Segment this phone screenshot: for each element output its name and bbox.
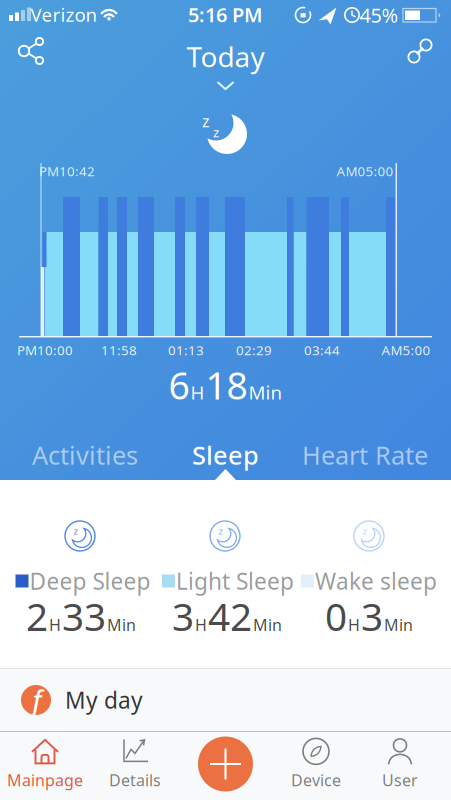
staticText: 02:29 bbox=[236, 341, 272, 359]
staticText: Verizon bbox=[30, 2, 97, 27]
staticText: H bbox=[195, 614, 207, 635]
staticText: f bbox=[32, 682, 41, 718]
staticText: 33 bbox=[62, 590, 106, 642]
staticText: 18 bbox=[205, 360, 247, 410]
staticText: 5:16 PM bbox=[188, 1, 263, 28]
staticText: z bbox=[202, 110, 210, 132]
staticText: Min bbox=[253, 614, 282, 635]
staticText: H bbox=[49, 614, 61, 635]
staticText: H bbox=[190, 380, 204, 405]
staticText: 3 bbox=[361, 590, 383, 642]
staticText: z bbox=[73, 525, 77, 537]
staticText: 42 bbox=[208, 590, 252, 642]
staticText: AM05:00 bbox=[336, 162, 393, 180]
staticText: User bbox=[382, 769, 418, 791]
staticText: 03:44 bbox=[304, 341, 340, 359]
staticText: My day bbox=[65, 685, 143, 715]
button[interactable]: Share bbox=[13, 33, 49, 69]
staticText: 3 bbox=[172, 590, 194, 642]
staticText: Mainpage bbox=[7, 769, 83, 791]
staticText: PM10:42 bbox=[39, 162, 95, 180]
button[interactable]: Details bbox=[109, 737, 161, 791]
staticText: Light Sleep bbox=[176, 566, 294, 596]
staticText: Min bbox=[384, 614, 413, 635]
staticText: 11:58 bbox=[101, 341, 137, 359]
button[interactable]: Heart Rate bbox=[302, 438, 428, 472]
staticText: PM10:00 bbox=[17, 341, 73, 359]
staticText: AM5:00 bbox=[381, 341, 430, 359]
staticText: Min bbox=[248, 380, 282, 405]
button[interactable]: f bbox=[0, 669, 451, 731]
staticText: z bbox=[213, 123, 219, 141]
staticText: 0 bbox=[325, 590, 347, 642]
button[interactable]: Device bbox=[291, 737, 341, 791]
staticText: z bbox=[362, 525, 366, 537]
staticText: Deep Sleep bbox=[29, 566, 150, 596]
staticText: Device bbox=[291, 769, 341, 791]
staticText: 45% bbox=[359, 2, 398, 28]
staticText: H bbox=[348, 614, 360, 635]
button[interactable]: User bbox=[382, 737, 418, 791]
staticText: 6 bbox=[168, 360, 189, 410]
staticText: Heart Rate bbox=[302, 438, 428, 472]
staticText: Activities bbox=[32, 438, 138, 472]
button[interactable]: Sleep bbox=[192, 438, 259, 472]
button[interactable]: Add bbox=[198, 736, 253, 791]
button[interactable]: Mainpage bbox=[7, 737, 83, 791]
staticText: 2 bbox=[26, 590, 48, 642]
button[interactable]: Link device bbox=[404, 35, 436, 67]
staticText: Min bbox=[107, 614, 136, 635]
staticText: Today bbox=[186, 38, 264, 75]
staticText: Details bbox=[109, 769, 161, 791]
staticText: Sleep bbox=[192, 438, 259, 472]
staticText: 01:13 bbox=[168, 341, 204, 359]
button[interactable]: Select day bbox=[186, 38, 264, 90]
button[interactable]: Activities bbox=[32, 438, 138, 472]
staticText: Wake sleep bbox=[315, 566, 437, 596]
staticText: z bbox=[218, 525, 222, 537]
